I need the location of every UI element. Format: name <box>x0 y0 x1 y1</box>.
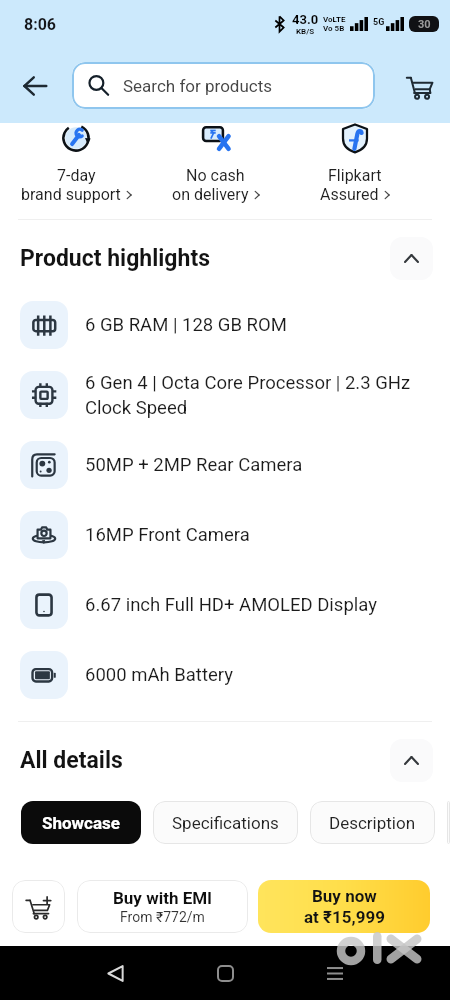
button[interactable]: Description <box>310 801 435 844</box>
staticText: All details <box>20 747 123 774</box>
staticText: Flipkart <box>328 166 382 185</box>
button[interactable]: Collapse All details <box>390 739 433 782</box>
button[interactable]: Collapse Product highlights <box>390 237 433 280</box>
staticText: KB/S <box>296 27 315 36</box>
staticText: 6 GB RAM | 128 GB ROM <box>85 314 287 336</box>
button[interactable]: Back <box>14 65 56 107</box>
button[interactable]: Flipkart <box>285 123 424 219</box>
staticText: 6 Gen 4 | Octa Core Processor | 2.3 GHz … <box>85 372 428 418</box>
staticText: Product highlights <box>20 245 210 272</box>
button[interactable]: 16MP Front Camera <box>20 500 428 570</box>
button[interactable]: Add to cart <box>12 880 65 933</box>
staticText: Description <box>329 813 416 833</box>
button[interactable]: Back <box>98 956 132 990</box>
staticText: VoLTE <box>323 15 346 24</box>
staticText: 8:06 <box>24 15 57 34</box>
button[interactable]: Search for products <box>72 62 375 109</box>
button[interactable]: 6 GB RAM | 128 GB ROM <box>20 290 428 360</box>
button[interactable]: Showcase <box>21 801 141 844</box>
staticText: 6.67 inch Full HD+ AMOLED Display <box>85 594 377 616</box>
staticText: on delivery <box>172 185 249 204</box>
staticText: From ₹772/m <box>120 909 205 925</box>
button[interactable]: Specifications <box>153 801 298 844</box>
button[interactable]: Home <box>208 956 242 990</box>
staticText: 16MP Front Camera <box>85 524 250 546</box>
button[interactable]: 6 Gen 4 | Octa Core Processor | 2.3 GHz … <box>20 360 428 430</box>
staticText: 30 <box>418 18 431 31</box>
button[interactable]: Buy with EMI <box>77 880 248 933</box>
staticText: brand support <box>21 185 121 204</box>
staticText: 43.0 <box>292 12 319 27</box>
staticText: 50MP + 2MP Rear Camera <box>85 454 303 476</box>
staticText: Assured <box>320 185 379 204</box>
staticText: Search for products <box>123 76 273 96</box>
staticText: Showcase <box>42 813 120 833</box>
staticText: 7-day <box>57 166 96 185</box>
staticText: Buy with EMI <box>113 888 213 908</box>
button[interactable]: 50MP + 2MP Rear Camera <box>20 430 428 500</box>
staticText: Specifications <box>172 813 279 833</box>
button[interactable]: 7-day <box>6 123 146 219</box>
staticText: Buy now <box>312 886 377 906</box>
staticText: Vo 5B <box>323 24 345 33</box>
button[interactable]: No cash <box>146 123 285 219</box>
button[interactable]: Buy now <box>258 880 430 933</box>
staticText: No cash <box>186 166 245 185</box>
button[interactable]: 6000 mAh Battery <box>20 640 428 710</box>
button[interactable]: 6.67 inch Full HD+ AMOLED Display <box>20 570 428 640</box>
staticText: 6000 mAh Battery <box>85 664 233 686</box>
staticText: 5G <box>373 17 385 28</box>
button[interactable]: Reviews <box>447 801 450 844</box>
button[interactable]: Cart <box>398 65 440 107</box>
staticText: at ₹15,999 <box>304 907 385 927</box>
button[interactable]: Recents <box>318 956 352 990</box>
